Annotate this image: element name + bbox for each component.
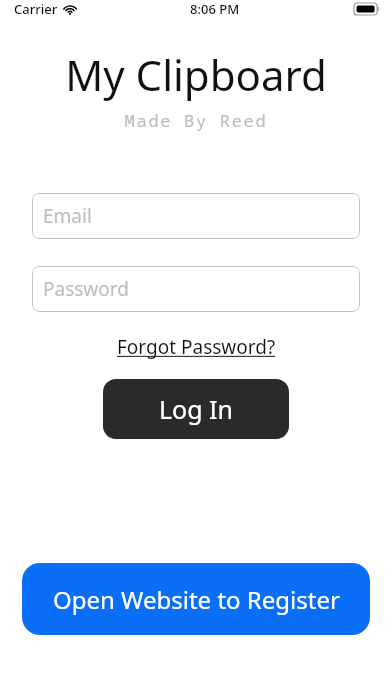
staticText: Forgot Password? <box>117 334 276 360</box>
staticText: Open Website to Register <box>53 583 340 616</box>
button[interactable]: Forgot Password? <box>111 331 282 363</box>
button[interactable]: Log In <box>103 379 289 439</box>
staticText: 8:06 PM <box>190 0 240 18</box>
staticText: My Clipboard <box>0 46 392 103</box>
staticText: Email <box>43 203 92 229</box>
button[interactable]: Password <box>32 266 360 312</box>
button[interactable]: Open Website to Register <box>22 563 370 635</box>
staticText: Log In <box>159 392 234 426</box>
staticText: Carrier <box>14 0 58 18</box>
staticText: Password <box>43 276 129 302</box>
staticText: Made By Reed <box>0 109 392 132</box>
button[interactable]: Email <box>32 193 360 239</box>
